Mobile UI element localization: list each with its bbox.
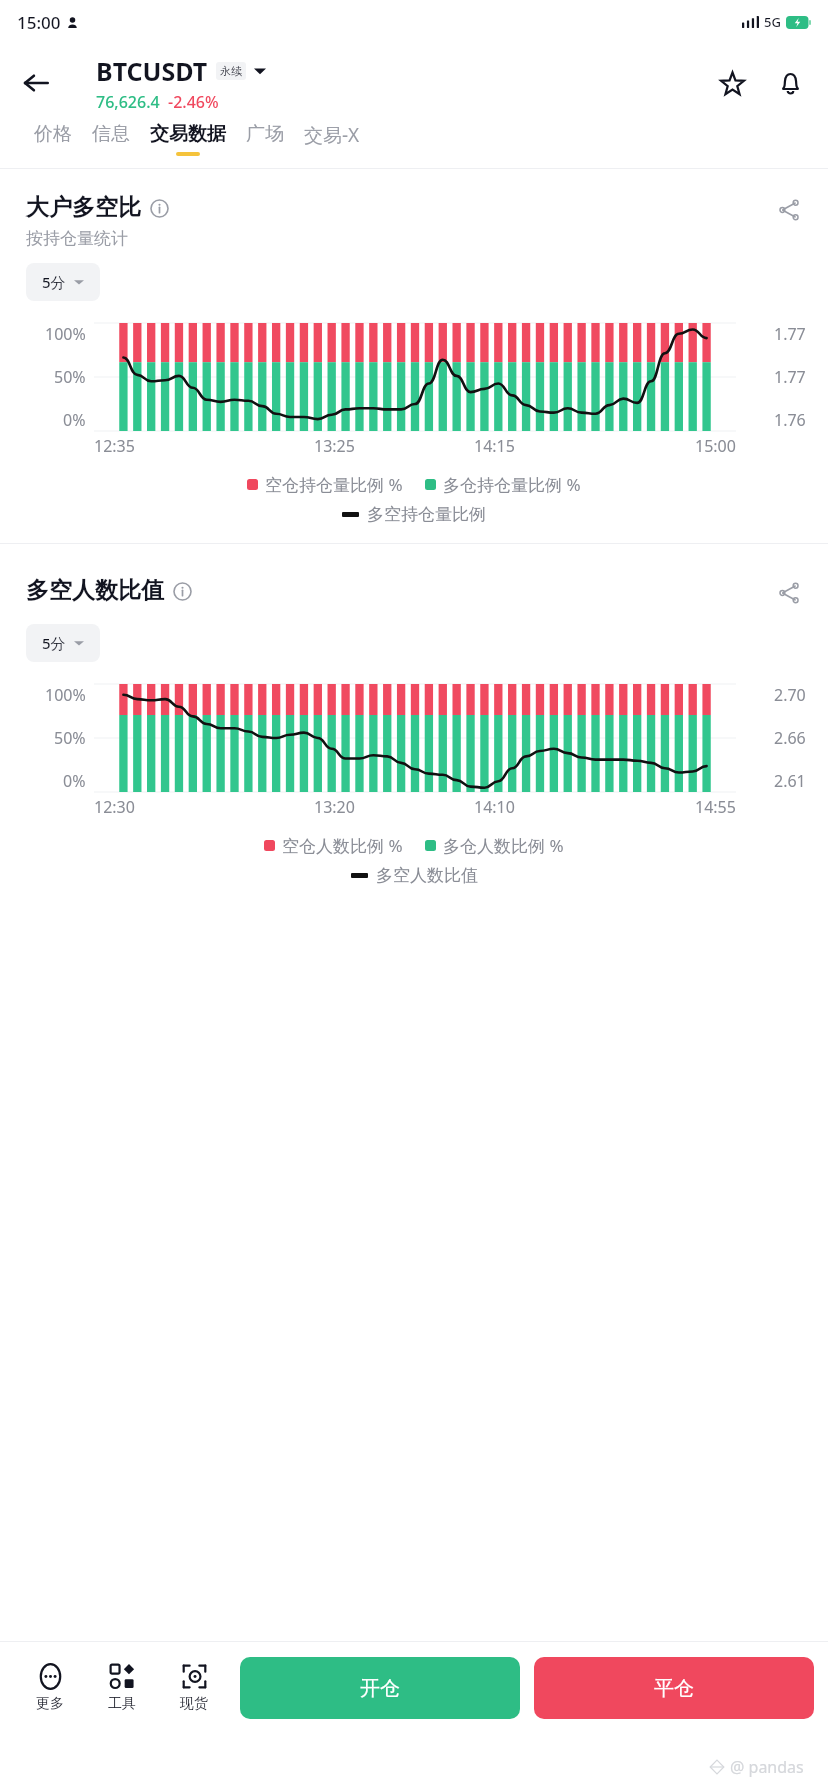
staticText: -2.46% — [168, 91, 219, 113]
staticText: 100% — [45, 323, 86, 345]
staticText: 12:35 — [94, 435, 135, 457]
button[interactable]: Switch market — [254, 65, 266, 77]
button[interactable]: Share — [772, 576, 806, 610]
staticText: 14:15 — [474, 435, 515, 457]
staticText: 50% — [54, 727, 86, 749]
button[interactable]: 现货 — [158, 1659, 230, 1717]
button[interactable]: 信息 — [82, 122, 140, 146]
staticText: 更多 — [36, 1695, 64, 1713]
button[interactable]: 平仓 — [534, 1657, 814, 1719]
staticText: 5分 — [42, 272, 66, 292]
staticText: 15:00 — [695, 435, 736, 457]
button[interactable]: 工具 — [86, 1659, 158, 1717]
staticText: 1.77 — [774, 366, 806, 388]
staticText: 广场 — [246, 122, 284, 146]
staticText: 14:55 — [695, 796, 736, 818]
staticText: 1.77 — [774, 323, 806, 345]
staticText: 5G — [764, 13, 781, 31]
button[interactable]: 交易数据 — [140, 122, 236, 156]
button[interactable]: Back — [8, 55, 64, 111]
staticText: 2.66 — [774, 727, 806, 749]
button[interactable]: 价格 — [24, 122, 82, 146]
button[interactable]: Share — [772, 193, 806, 227]
staticText: BTCUSDT — [96, 54, 208, 88]
staticText: 空仓人数比例 % — [282, 834, 403, 857]
button[interactable]: 5分 — [26, 263, 100, 301]
staticText: 价格 — [34, 122, 72, 146]
button[interactable]: 交易-X — [294, 122, 370, 148]
button[interactable]: Alerts — [766, 59, 814, 107]
staticText: 多空人数比值 — [376, 865, 478, 886]
staticText: 信息 — [92, 122, 130, 146]
staticText: 永续 — [220, 64, 242, 78]
button[interactable]: Info — [172, 581, 192, 601]
staticText: 0% — [63, 770, 86, 792]
staticText: 按持仓量统计 — [26, 228, 128, 249]
staticText: 空仓持仓量比例 % — [265, 473, 403, 496]
staticText: 13:20 — [314, 796, 355, 818]
staticText: 12:30 — [94, 796, 135, 818]
staticText: 15:00 — [17, 11, 61, 34]
staticText: 5分 — [42, 633, 66, 653]
staticText: 多空人数比值 — [26, 576, 164, 605]
staticText: 多仓人数比例 % — [443, 834, 564, 857]
staticText: 交易数据 — [150, 122, 226, 146]
staticText: 现货 — [180, 1695, 208, 1713]
button[interactable]: Info — [149, 198, 169, 218]
staticText: 50% — [54, 366, 86, 388]
staticText: 2.61 — [774, 770, 806, 792]
staticText: 100% — [45, 684, 86, 706]
button[interactable]: 广场 — [236, 122, 294, 146]
button[interactable]: 更多 — [14, 1659, 86, 1717]
staticText: 开仓 — [360, 1676, 400, 1701]
staticText: 平仓 — [654, 1676, 694, 1701]
staticText: @ pandas — [730, 1756, 804, 1778]
staticText: 多空持仓量比例 — [367, 504, 486, 525]
staticText: 2.70 — [774, 684, 806, 706]
button[interactable]: 5分 — [26, 624, 100, 662]
staticText: 13:25 — [314, 435, 355, 457]
staticText: 1.76 — [774, 409, 806, 431]
staticText: 14:10 — [474, 796, 515, 818]
staticText: 76,626.4 — [96, 91, 160, 113]
staticText: 交易-X — [304, 122, 360, 148]
button[interactable]: 开仓 — [240, 1657, 520, 1719]
staticText: 大户多空比 — [26, 193, 141, 222]
staticText: 多仓持仓量比例 % — [443, 473, 581, 496]
staticText: 0% — [63, 409, 86, 431]
staticText: 工具 — [108, 1695, 136, 1713]
button[interactable]: Favorite — [708, 59, 756, 107]
